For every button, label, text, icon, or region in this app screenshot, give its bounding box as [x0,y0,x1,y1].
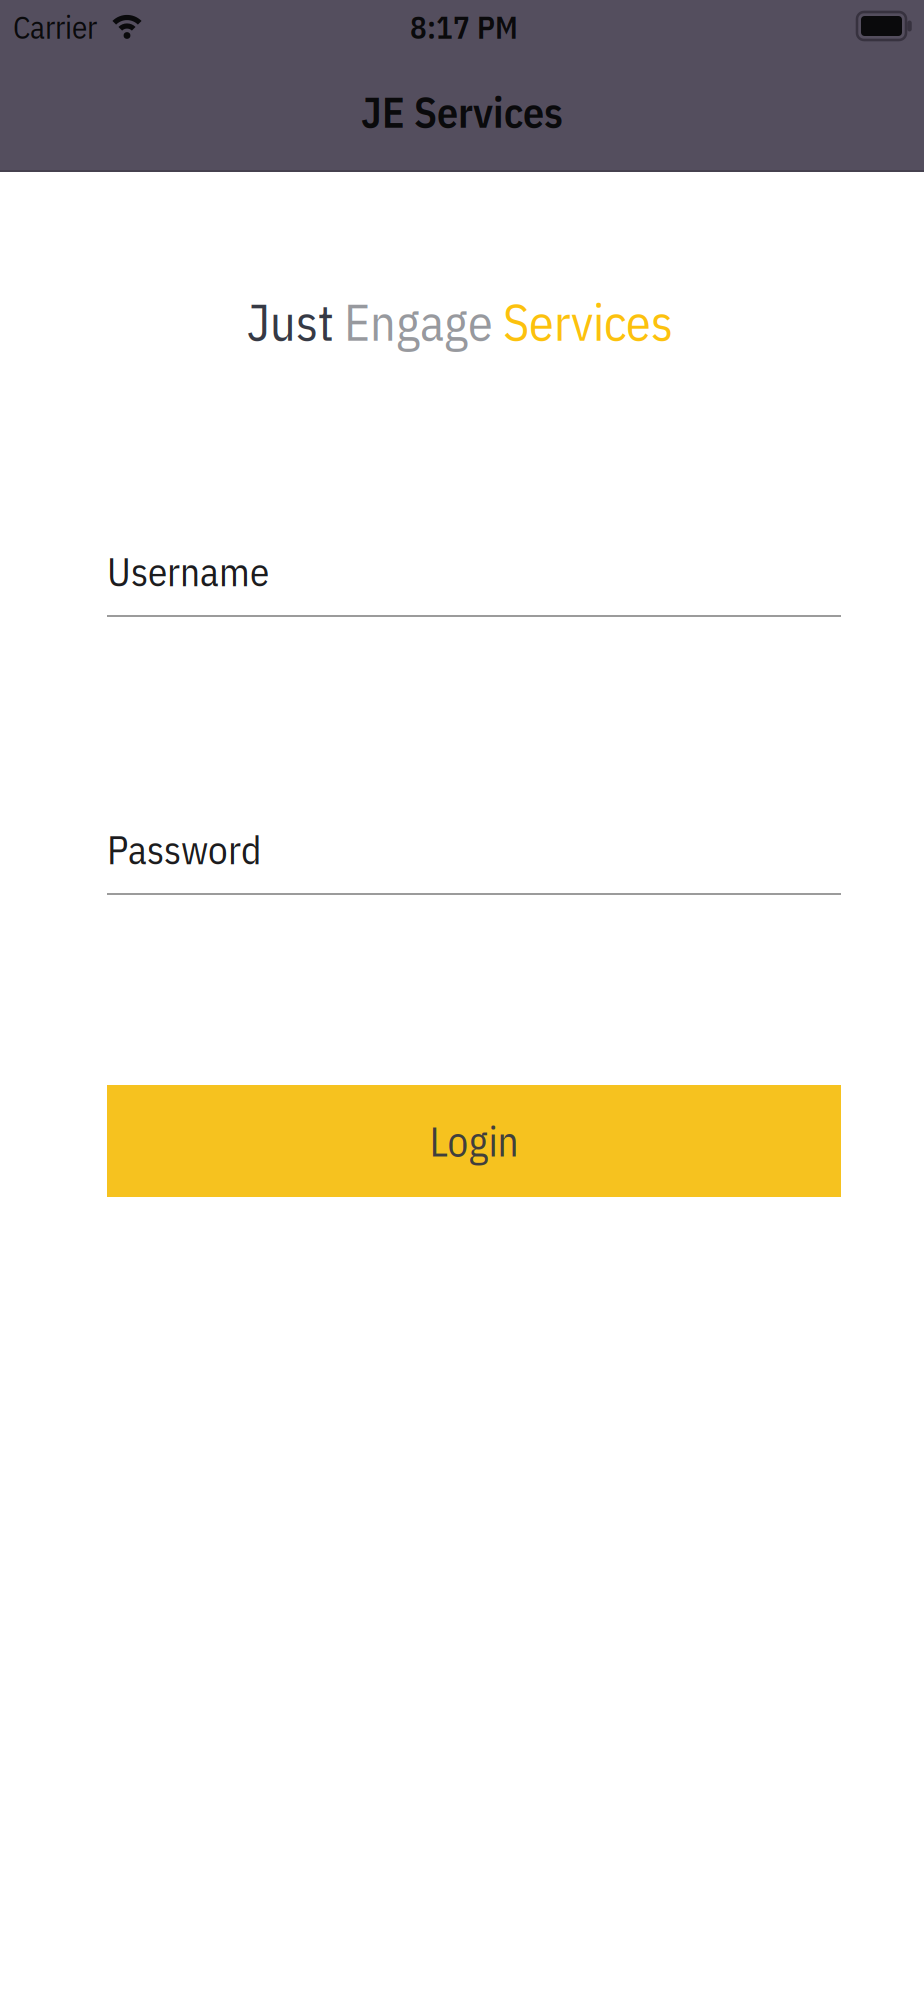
staticText: Carrier [13,7,97,47]
staticText: Engage [344,290,493,354]
button[interactable]: Password [107,825,841,895]
staticText: Login [429,1115,518,1167]
button[interactable]: Username [107,547,841,617]
staticText: 8:17 PM [410,7,518,47]
button[interactable]: Login [107,1085,841,1197]
staticText: Password [107,825,261,874]
staticText: Services [503,290,673,354]
staticText: Just [247,290,334,354]
staticText: JE Services [361,85,563,139]
staticText: Username [107,547,269,596]
